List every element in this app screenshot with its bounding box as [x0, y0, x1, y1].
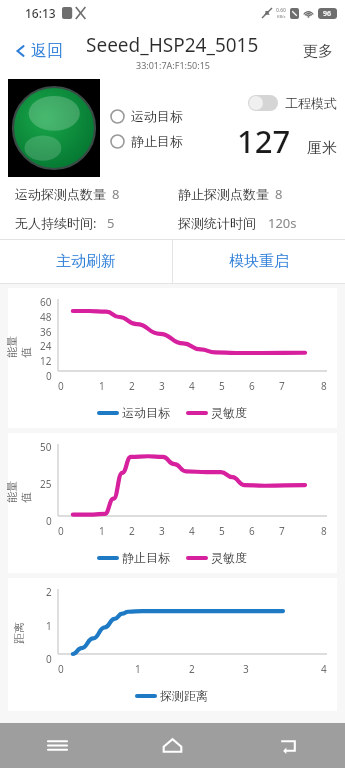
staticText: 0.60	[276, 7, 286, 14]
staticText: 探测距离	[160, 688, 208, 703]
staticText: 8	[112, 185, 120, 203]
staticText: 3	[159, 379, 165, 393]
staticText: 24	[40, 339, 52, 353]
staticText: 36	[40, 325, 52, 339]
staticText: 2	[129, 524, 135, 538]
staticText: 0	[58, 379, 64, 393]
staticText: 4	[189, 379, 195, 393]
staticText: 静止目标	[131, 133, 183, 149]
staticText: 33:01:7A:F1:50:15	[136, 59, 210, 71]
staticText: 探测统计时间	[178, 215, 256, 231]
button[interactable]: 静止目标	[110, 133, 183, 149]
staticText: 工程模式	[285, 95, 337, 111]
staticText: 厘米	[307, 139, 337, 158]
staticText: 8	[321, 524, 327, 538]
staticText: 2	[129, 379, 135, 393]
staticText: 运动目标	[122, 405, 170, 420]
staticText: 48	[40, 310, 52, 324]
staticText: 0	[58, 662, 64, 676]
staticText: 灵敏度	[211, 550, 247, 565]
staticText: 4	[321, 662, 327, 676]
staticText: 5	[219, 524, 225, 538]
staticText: 0	[46, 514, 52, 528]
button[interactable]: 运动目标	[110, 108, 183, 124]
button[interactable]: Home	[115, 723, 230, 768]
staticText: 3	[159, 524, 165, 538]
staticText: 能量值	[5, 336, 33, 358]
staticText: 7	[279, 524, 285, 538]
staticText: 1	[46, 619, 52, 633]
staticText: 7	[279, 379, 285, 393]
staticText: 能量值	[5, 481, 33, 503]
staticText: 120s	[268, 214, 297, 232]
staticText: 运动目标	[131, 108, 183, 124]
staticText: 60	[40, 295, 52, 309]
staticText: 返回	[31, 41, 63, 61]
button[interactable]: 返回	[10, 37, 67, 65]
staticText: 无人持续时间:	[15, 214, 97, 232]
button[interactable]: Recent apps	[0, 723, 115, 768]
staticText: 0	[58, 524, 64, 538]
staticText: 12	[40, 354, 52, 368]
button[interactable]: 主动刷新	[0, 239, 172, 284]
staticText: KB/s	[277, 14, 286, 19]
staticText: 1	[99, 524, 105, 538]
staticText: 6	[249, 379, 255, 393]
staticText: 1	[99, 379, 105, 393]
staticText: 6	[249, 524, 255, 538]
staticText: 主动刷新	[56, 252, 116, 271]
button[interactable]: Back	[230, 723, 345, 768]
staticText: 5	[107, 214, 115, 232]
staticText: 8	[321, 379, 327, 393]
staticText: 4	[189, 524, 195, 538]
button[interactable]: 更多	[291, 34, 345, 69]
staticText: 2	[46, 585, 52, 599]
staticText: 静止目标	[122, 550, 170, 565]
staticText: 96	[323, 9, 332, 19]
staticText: 距离	[12, 622, 26, 644]
staticText: Seeed_HSP24_5015	[86, 32, 259, 58]
staticText: 0	[46, 369, 52, 383]
staticText: 50	[40, 440, 52, 454]
staticText: 3	[243, 662, 249, 676]
staticText: 静止探测点数量	[178, 186, 269, 202]
staticText: 16:13	[25, 5, 56, 21]
staticText: 5	[219, 379, 225, 393]
staticText: 8	[275, 185, 283, 203]
staticText: 运动探测点数量	[15, 186, 106, 202]
staticText: 2	[189, 662, 195, 676]
button[interactable]: 工程模式	[248, 95, 337, 111]
staticText: 模块重启	[229, 252, 289, 271]
staticText: 25	[40, 477, 52, 491]
staticText: 127	[237, 120, 291, 162]
staticText: 灵敏度	[211, 405, 247, 420]
staticText: 0	[46, 652, 52, 666]
button[interactable]: 模块重启	[173, 239, 345, 284]
staticText: 更多	[303, 42, 333, 61]
staticText: 1	[135, 662, 141, 676]
